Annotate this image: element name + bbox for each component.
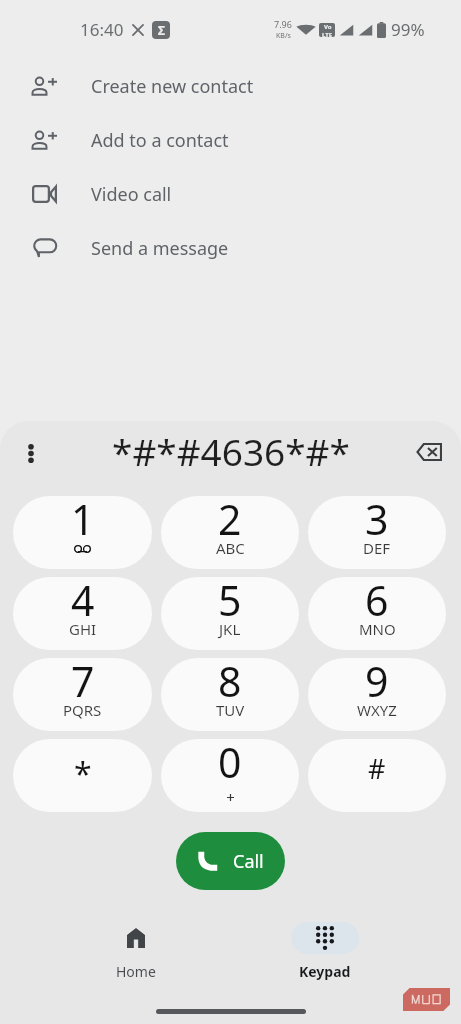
staticText: GHI bbox=[69, 619, 97, 639]
staticText: Σ bbox=[158, 22, 165, 38]
staticText: ABC bbox=[216, 538, 245, 558]
button[interactable]: 9 bbox=[308, 658, 446, 731]
staticText: 99% bbox=[391, 18, 425, 41]
button[interactable]: 4 bbox=[13, 577, 152, 650]
button[interactable]: Add to a contact bbox=[0, 113, 461, 167]
button[interactable]: Video call bbox=[0, 167, 461, 221]
staticText: DEF bbox=[363, 538, 391, 558]
button[interactable]: Send a message bbox=[0, 221, 461, 275]
button[interactable]: More options bbox=[15, 437, 47, 469]
staticText: Keypad bbox=[299, 962, 351, 981]
staticText: MNO bbox=[359, 619, 396, 639]
staticText: Create new contact bbox=[91, 74, 254, 99]
staticText: Home bbox=[116, 962, 156, 981]
button[interactable]: Backspace bbox=[409, 432, 449, 472]
staticText: TUV bbox=[216, 700, 245, 720]
staticText: # bbox=[368, 750, 386, 787]
staticText: JKL bbox=[219, 619, 241, 639]
staticText: 3 bbox=[365, 496, 389, 547]
staticText: Send a message bbox=[91, 236, 229, 261]
staticText: 7 bbox=[71, 658, 95, 709]
staticText: 6 bbox=[365, 577, 389, 628]
staticText: Call bbox=[233, 849, 264, 874]
button[interactable]: 6 bbox=[308, 577, 446, 650]
button[interactable]: 8 bbox=[161, 658, 299, 731]
button[interactable]: 7 bbox=[13, 658, 152, 731]
staticText: 0 bbox=[218, 739, 242, 790]
button[interactable]: 3 bbox=[308, 496, 446, 569]
staticText: * bbox=[74, 752, 92, 796]
button[interactable]: 1 bbox=[13, 496, 152, 569]
button[interactable]: Home bbox=[89, 922, 183, 984]
staticText: PQRS bbox=[63, 700, 102, 720]
button[interactable]: 0 bbox=[161, 739, 299, 812]
button[interactable]: Call bbox=[176, 832, 285, 890]
button[interactable]: 2 bbox=[161, 496, 299, 569]
staticText: KB/s bbox=[276, 31, 291, 41]
staticText: 5 bbox=[218, 577, 242, 628]
staticText: 8 bbox=[218, 658, 242, 709]
staticText: Video call bbox=[91, 182, 172, 207]
button[interactable]: # bbox=[308, 739, 446, 812]
staticText: WXYZ bbox=[357, 700, 397, 720]
staticText: Vo bbox=[324, 23, 332, 31]
staticText: Add to a contact bbox=[91, 128, 229, 153]
button[interactable]: * bbox=[13, 739, 152, 812]
staticText: 16:40 bbox=[80, 18, 124, 41]
staticText: 9 bbox=[365, 658, 389, 709]
button[interactable]: Keypad bbox=[278, 922, 372, 984]
staticText: 1 bbox=[71, 496, 95, 547]
staticText: 2 bbox=[218, 496, 242, 547]
staticText: 4 bbox=[71, 577, 95, 628]
button[interactable]: Create new contact bbox=[0, 59, 461, 113]
staticText: 7.96 bbox=[274, 18, 292, 30]
staticText: LTE bbox=[322, 31, 333, 37]
staticText: *#*#4636*#* bbox=[112, 426, 350, 476]
button[interactable]: 5 bbox=[161, 577, 299, 650]
